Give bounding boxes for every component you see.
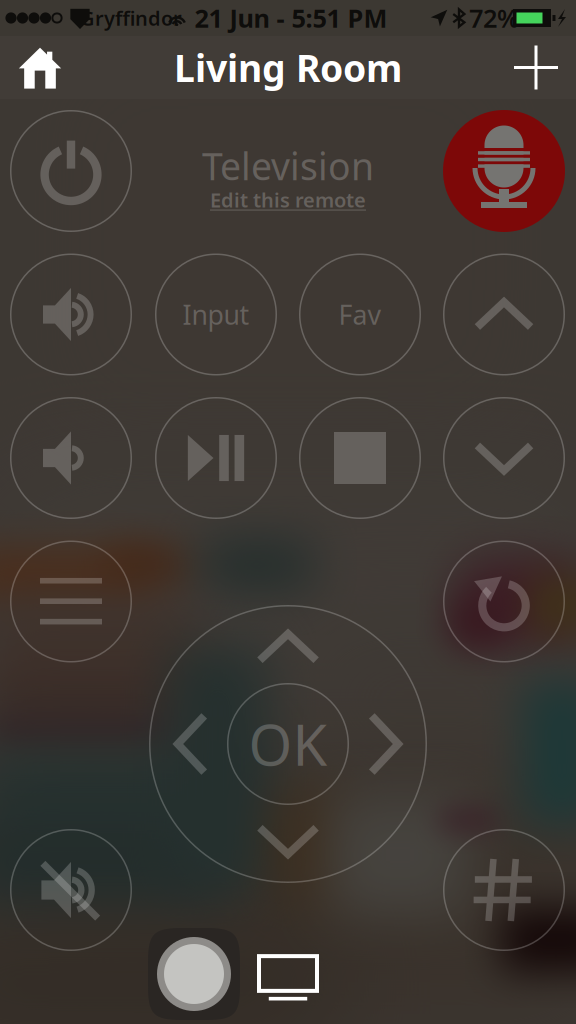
staticText: OK — [248, 707, 327, 781]
staticText: Edit this remote — [210, 186, 366, 213]
button[interactable]: Favorites — [299, 253, 421, 375]
button[interactable]: Television — [202, 141, 374, 213]
staticText: Fav — [338, 297, 381, 332]
button[interactable]: Devices — [243, 940, 333, 1016]
button[interactable]: OK — [149, 605, 427, 883]
button[interactable]: Mute — [10, 829, 132, 951]
button[interactable]: Play pause — [155, 397, 277, 519]
button[interactable]: Stop — [299, 397, 421, 519]
staticText: Television — [202, 141, 374, 190]
button[interactable]: Channel up — [443, 253, 565, 375]
button[interactable]: Add remote — [492, 36, 576, 98]
staticText: 72% — [469, 1, 519, 35]
button[interactable]: Voice search — [443, 110, 565, 232]
button[interactable]: Remote — [148, 928, 240, 1020]
button[interactable]: Volume up — [10, 253, 132, 375]
button[interactable]: Channel down — [443, 397, 565, 519]
staticText: Input — [182, 297, 249, 332]
button[interactable]: Menu — [10, 540, 132, 662]
button[interactable]: Keypad — [443, 829, 565, 951]
button[interactable]: Refresh — [443, 540, 565, 662]
staticText: Living Room — [174, 43, 402, 92]
staticText: 21 Jun - 5:51 PM — [194, 1, 387, 35]
button[interactable]: Input — [155, 253, 277, 375]
button[interactable]: Power — [10, 110, 132, 232]
staticText: Gryffindor — [80, 5, 182, 31]
button[interactable]: Home — [0, 36, 84, 98]
button[interactable]: Volume down — [10, 397, 132, 519]
